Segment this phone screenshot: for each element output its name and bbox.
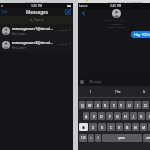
- staticText: Hey Lower: [12, 46, 26, 50]
- button[interactable]: Dictate: [95, 134, 101, 142]
- staticText: V: [118, 125, 121, 130]
- staticText: A: [85, 114, 88, 119]
- button[interactable]: U: [126, 101, 133, 109]
- staticText: S: [93, 114, 95, 119]
- staticText: 3:26 PM: [31, 4, 43, 8]
- staticText: F: [109, 114, 111, 119]
- button[interactable]: Backspace: [148, 123, 150, 131]
- button[interactable]: Z: [89, 123, 97, 131]
- button[interactable]: V: [116, 123, 123, 131]
- staticText: messageuser1@simul...: [12, 26, 54, 31]
- button[interactable]: return: [143, 134, 150, 142]
- staticText: D: [100, 114, 103, 119]
- button[interactable]: F: [106, 112, 113, 120]
- button[interactable]: B: [124, 123, 131, 131]
- staticText: L: [149, 114, 150, 119]
- button[interactable]: App store: [80, 80, 84, 84]
- button[interactable]: A: [83, 112, 89, 120]
- button[interactable]: L: [146, 112, 150, 120]
- staticText: return: [146, 136, 150, 140]
- staticText: R: [104, 103, 107, 108]
- staticText: iMessage: [89, 80, 102, 84]
- button[interactable]: I: [78, 86, 104, 97]
- button[interactable]: Back: [81, 11, 86, 16]
- staticText: 3:26 PM: [58, 28, 67, 31]
- staticText: W: [88, 103, 92, 108]
- button[interactable]: C: [107, 123, 115, 131]
- button[interactable]: I: [134, 101, 141, 109]
- staticText: Hey 100 th: [134, 32, 150, 37]
- button[interactable]: Search: [30, 18, 44, 22]
- staticText: Lance: [79, 4, 88, 8]
- staticText: G: [116, 114, 119, 119]
- staticText: Search: [34, 18, 44, 22]
- button[interactable]: Edit: [2, 10, 8, 14]
- staticText: N: [134, 125, 137, 130]
- button[interactable]: Hey 100 th: [134, 31, 150, 38]
- staticText: messageuser2@simul...: [12, 40, 54, 45]
- staticText: 3:26 PM: [110, 4, 122, 8]
- staticText: C: [110, 125, 113, 130]
- button[interactable]: messageuser2@simul...: [0, 38, 73, 52]
- button[interactable]: Shift: [79, 123, 88, 131]
- staticText: H: [124, 114, 127, 119]
- button[interactable]: It: [131, 86, 150, 97]
- staticText: messageuser1@si... ›: [105, 19, 127, 22]
- staticText: It: [143, 90, 146, 94]
- staticText: Y: [120, 103, 123, 108]
- button[interactable]: 123: [79, 134, 87, 142]
- button[interactable]: R: [102, 101, 109, 109]
- button[interactable]: Compose new message: [65, 9, 71, 15]
- staticText: B: [126, 125, 129, 130]
- button[interactable]: N: [132, 123, 139, 131]
- staticText: U: [128, 103, 131, 108]
- button[interactable]: D: [98, 112, 105, 120]
- button[interactable]: space: [102, 134, 142, 142]
- button[interactable]: Emoji: [88, 134, 94, 142]
- button[interactable]: T: [110, 101, 117, 109]
- staticText: The: [115, 90, 121, 94]
- staticText: I: [90, 90, 92, 94]
- button[interactable]: W: [86, 101, 93, 109]
- button[interactable]: X: [98, 123, 106, 131]
- staticText: Hey Lower: [12, 32, 26, 36]
- button[interactable]: O: [142, 101, 149, 109]
- staticText: K: [140, 114, 143, 119]
- staticText: X: [101, 125, 104, 130]
- button[interactable]: Q: [79, 101, 85, 109]
- button[interactable]: messageuser1@simul...: [0, 24, 73, 38]
- staticText: Today 11:52 PM: [76, 26, 150, 29]
- staticText: I: [137, 103, 139, 108]
- button[interactable]: M: [140, 123, 147, 131]
- staticText: M: [142, 125, 146, 130]
- staticText: E: [97, 103, 99, 108]
- staticText: iMessage: [76, 23, 150, 26]
- button[interactable]: iMessage: [87, 79, 150, 84]
- staticText: iPhone 8s - iOS 11.0: [25, 0, 48, 3]
- staticText: Messages: [26, 9, 48, 15]
- staticText: iPhone 8s - iOS 11.0 (Simulator): [108, 0, 144, 3]
- staticText: space: [118, 136, 126, 140]
- staticText: J: [133, 114, 134, 119]
- button[interactable]: H: [122, 112, 129, 120]
- button[interactable]: J: [130, 112, 137, 120]
- button[interactable]: S: [90, 112, 97, 120]
- staticText: 3:26 PM: [58, 42, 67, 45]
- button[interactable]: G: [114, 112, 121, 120]
- button[interactable]: The: [104, 86, 131, 97]
- button[interactable]: Y: [118, 101, 125, 109]
- button[interactable]: E: [94, 101, 101, 109]
- button[interactable]: K: [138, 112, 145, 120]
- staticText: 123: [81, 136, 86, 140]
- staticText: Z: [92, 125, 95, 130]
- staticText: T: [113, 103, 115, 108]
- staticText: O: [144, 103, 147, 108]
- staticText: Q: [81, 103, 84, 108]
